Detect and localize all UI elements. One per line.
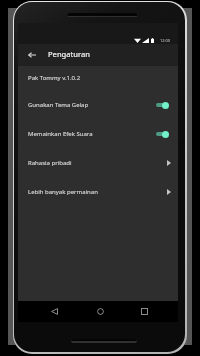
button[interactable]: Home (87, 301, 113, 322)
button[interactable]: Navigate up (23, 46, 41, 64)
staticText: Gunakan Tema Gelap (28, 101, 89, 109)
staticText: 12:00 (160, 38, 170, 43)
staticText: Pengaturan (48, 49, 90, 59)
button[interactable]: Recent apps (131, 301, 157, 322)
button[interactable]: Rahasia pribadi (18, 148, 178, 177)
button[interactable]: Gunakan Tema Gelap (18, 90, 178, 119)
staticText: Rahasia pribadi (28, 159, 72, 167)
button[interactable]: Pak Tommy v.1.0.2 (18, 66, 178, 90)
staticText: Memainkan Efek Suara (28, 130, 93, 138)
button[interactable]: Lebih banyak permainan (18, 177, 178, 206)
button[interactable]: Memainkan Efek Suara (18, 119, 178, 148)
staticText: Lebih banyak permainan (28, 188, 98, 196)
staticText: Pak Tommy v.1.0.2 (28, 74, 81, 82)
button[interactable]: Back (41, 301, 67, 322)
